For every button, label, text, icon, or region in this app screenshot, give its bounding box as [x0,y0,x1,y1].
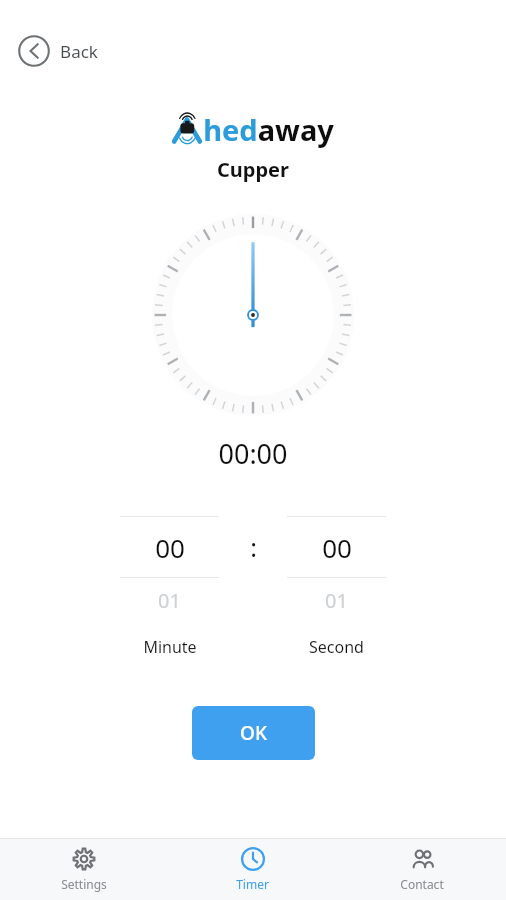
staticText: Back [60,40,98,63]
staticText: Minute [143,636,197,658]
staticText: 00 [322,530,352,565]
staticText: Timer [236,876,269,892]
button[interactable]: 00 [120,516,219,578]
staticText: 00 [155,530,185,565]
staticText: Cupper [217,156,289,183]
staticText: 00:00 [218,435,288,472]
staticText: 01 [325,587,348,614]
button[interactable]: 00 [287,516,386,578]
other: Back [18,35,50,67]
button[interactable]: Settings [0,838,168,900]
staticText: 01 [158,587,181,614]
staticText: : [250,530,257,564]
staticText: Settings [61,876,107,892]
button[interactable]: Back [18,28,506,74]
staticText: Second [309,636,364,658]
staticText: Contact [400,876,444,892]
staticText: OK [240,720,267,746]
button[interactable]: Timer [168,838,337,900]
staticText: hedaway [203,110,334,149]
button[interactable]: Contact [337,838,506,900]
button[interactable]: OK [192,706,315,760]
